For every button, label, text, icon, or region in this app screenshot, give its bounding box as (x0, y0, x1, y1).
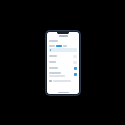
button[interactable]: Input field (49, 48, 77, 52)
button[interactable]: Toggle (47, 59, 79, 65)
button[interactable]: Title (47, 32, 79, 38)
button[interactable]: Select (74, 67, 77, 70)
button[interactable]: Select (74, 73, 77, 76)
button[interactable]: Select (47, 65, 79, 71)
button[interactable]: Input field (47, 44, 79, 53)
button[interactable]: Select (47, 71, 79, 78)
button[interactable] (47, 38, 79, 44)
button[interactable] (47, 78, 79, 84)
button[interactable]: Toggle (73, 61, 77, 64)
button[interactable]: Toggle (73, 55, 77, 58)
button[interactable]: Toggle (47, 53, 79, 59)
